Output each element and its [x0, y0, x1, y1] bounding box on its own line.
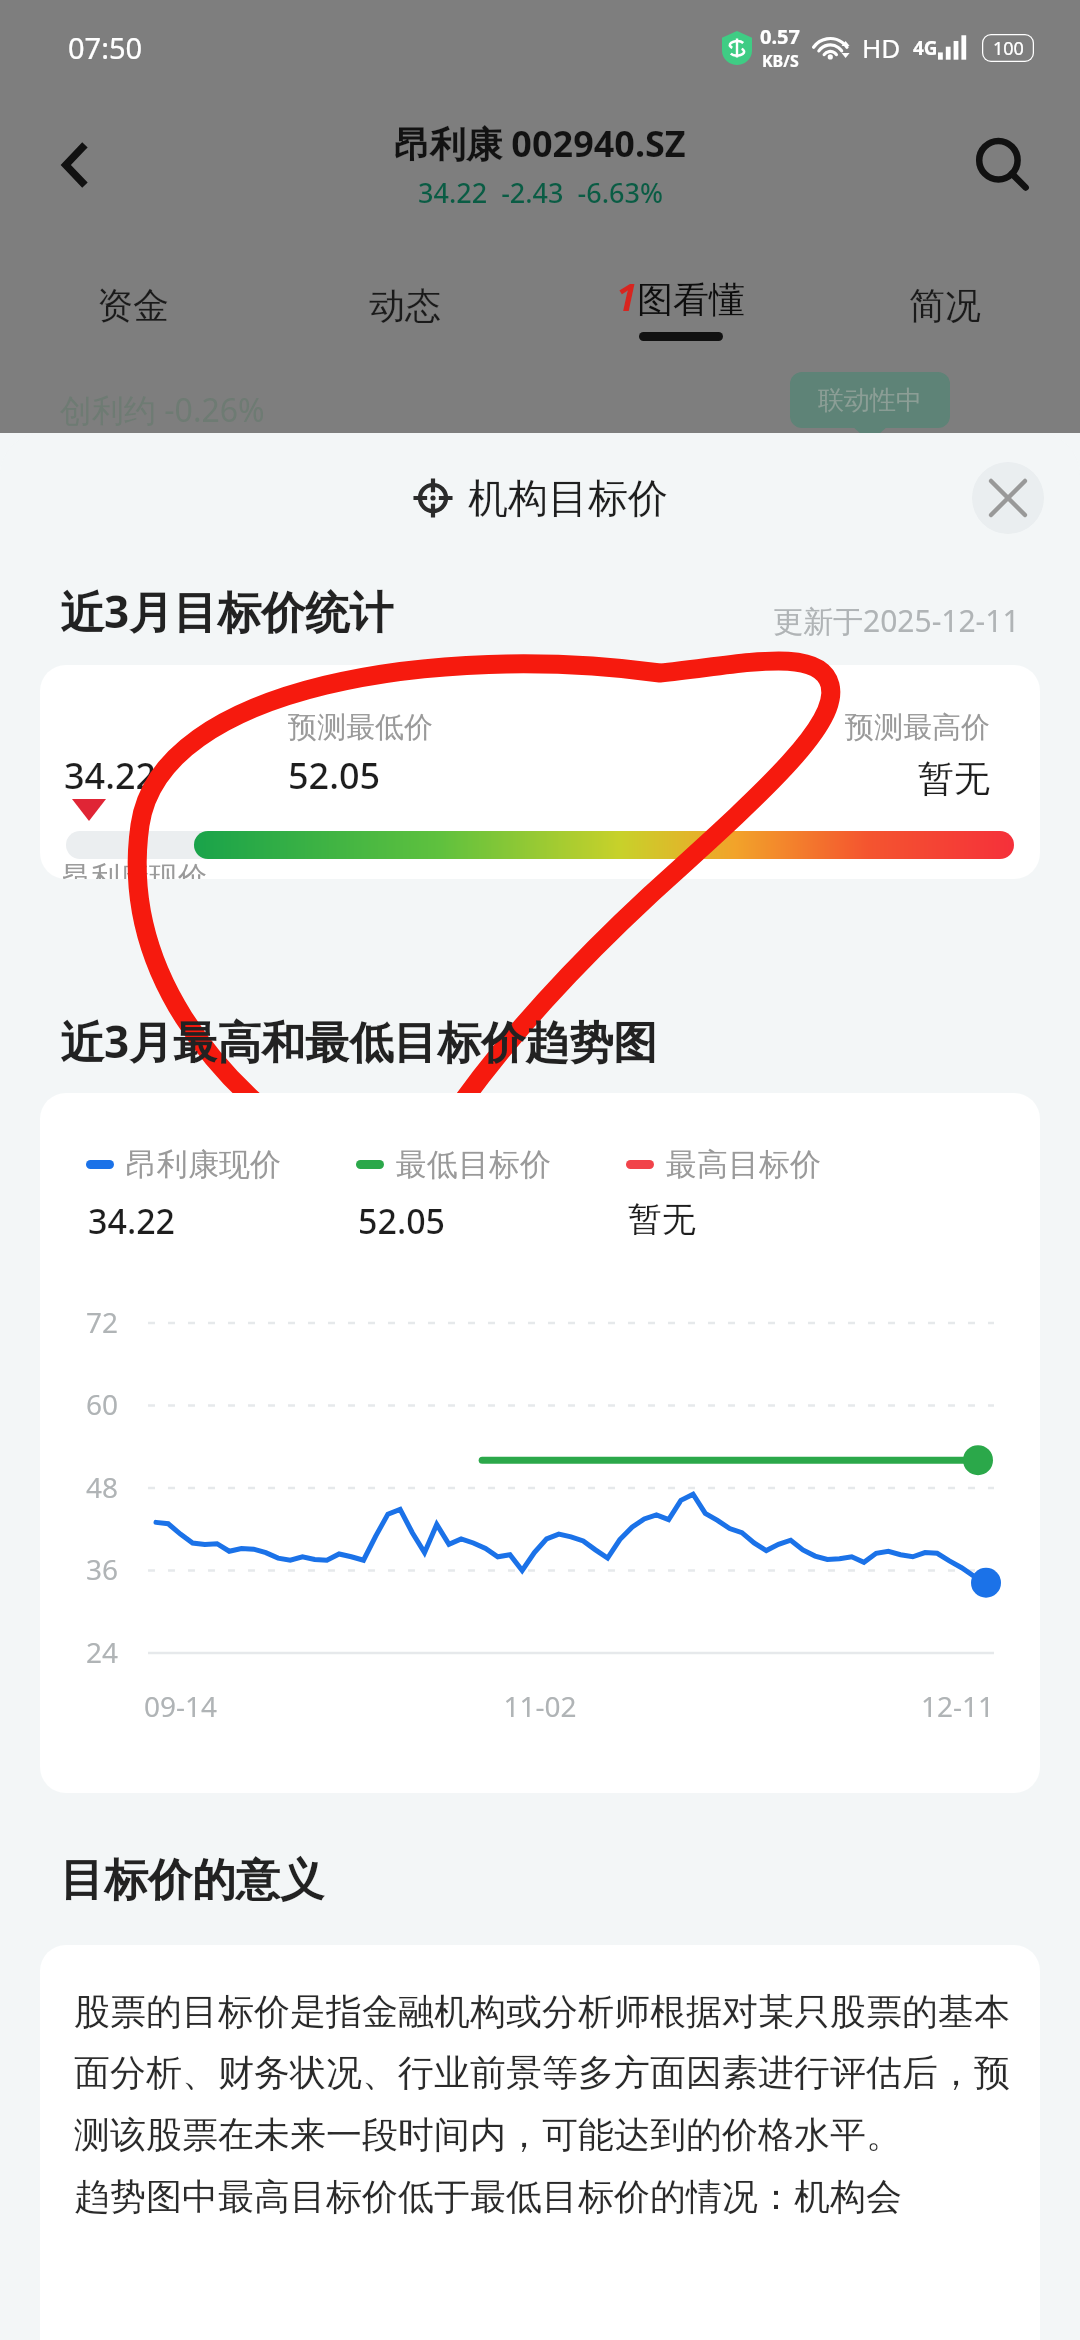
staticText: 最低目标价 [396, 1145, 551, 1184]
staticText: 股票的目标价是指金融机构或分析师根据对某只股票的基本面分析、财务状况、行业前景等… [74, 1989, 1012, 2220]
staticText: 预测最高价 [845, 709, 990, 746]
staticText: 100 [993, 36, 1024, 61]
staticText: HD [862, 30, 901, 65]
staticText: 60 [86, 1385, 119, 1423]
staticText: 34.22 [88, 1198, 176, 1244]
button[interactable]: 动态 [295, 240, 515, 370]
staticText: 1 [616, 270, 637, 322]
staticText: 07:50 [68, 28, 143, 67]
button[interactable]: Search [954, 117, 1050, 213]
staticText: 更新于2025-12-11 [773, 600, 1020, 641]
staticText: 图看懂 [637, 277, 745, 322]
staticText: 72 [86, 1303, 119, 1341]
staticText: 4G [913, 35, 938, 61]
staticText: 昂利康现价 [62, 859, 207, 879]
staticText: 暂无 [918, 756, 990, 801]
staticText: 最高目标价 [666, 1145, 821, 1184]
staticText: 48 [86, 1468, 119, 1506]
staticText: KB/S [762, 50, 799, 72]
button[interactable]: Back [30, 120, 120, 210]
staticText: 24 [86, 1633, 119, 1671]
staticText: 联动性中 [818, 384, 922, 417]
staticText: 12-11 [40, 1687, 994, 1725]
button[interactable]: 简况 [835, 240, 1055, 370]
staticText: 动态 [369, 283, 441, 328]
staticText: 36 [86, 1550, 119, 1588]
staticText: 近3月最高和最低目标价趋势图 [60, 1011, 658, 1071]
staticText: 52.05 [288, 751, 381, 800]
staticText: 近3月目标价统计 [60, 581, 394, 641]
button[interactable]: Close [972, 462, 1044, 534]
staticText: 机构目标价 [468, 473, 668, 523]
staticText: 34.22 [64, 751, 157, 800]
staticText: 34.22 -2.43 -6.63% [418, 174, 663, 211]
staticText: 52.05 [358, 1198, 446, 1244]
staticText: 11-02 [40, 1687, 1040, 1725]
staticText: 资金 [97, 283, 169, 328]
staticText: 简况 [909, 283, 981, 328]
staticText: 预测最低价 [288, 709, 433, 746]
button[interactable]: 资金 [23, 240, 243, 370]
staticText: 创利约 -0.26% [60, 388, 265, 432]
staticText: 暂无 [628, 1198, 696, 1241]
staticText: 目标价的意义 [60, 1853, 324, 1908]
staticText: 昂利康现价 [126, 1145, 281, 1184]
staticText: 09-14 [144, 1687, 218, 1725]
staticText: 0.57 [760, 23, 800, 50]
staticText: 昂利康 002940.SZ [394, 119, 686, 168]
button[interactable]: 1 [570, 240, 790, 370]
